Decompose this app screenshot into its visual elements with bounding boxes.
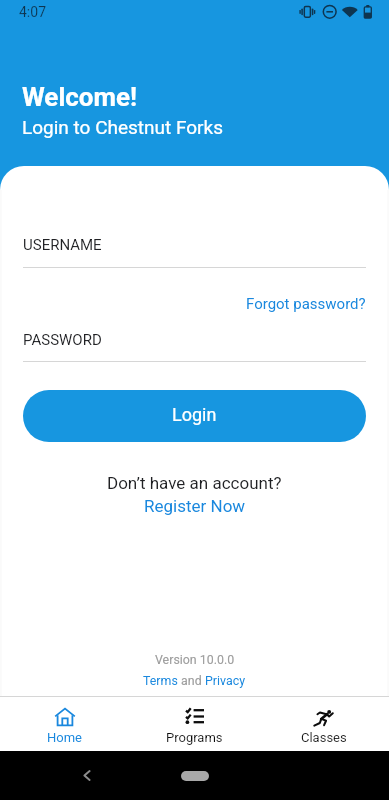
button[interactable]: Home — [0, 697, 129, 751]
staticText: USERNAME — [23, 236, 102, 254]
button[interactable]: Register Now — [144, 496, 246, 516]
button[interactable]: Terms — [143, 673, 178, 688]
staticText: Programs — [166, 730, 223, 745]
button[interactable]: Login — [23, 390, 366, 442]
button[interactable]: Programs — [129, 697, 259, 751]
button[interactable]: Back — [70, 751, 104, 800]
staticText: Login to Chestnut Forks — [22, 116, 223, 138]
button[interactable]: Home gesture — [181, 771, 209, 781]
button[interactable]: Privacy — [205, 673, 246, 688]
staticText: Login — [172, 404, 217, 425]
staticText: Home — [47, 730, 82, 745]
staticText: PASSWORD — [23, 331, 102, 349]
staticText: 4:07 — [19, 4, 46, 20]
staticText: Welcome! — [22, 82, 138, 112]
staticText: Don’t have an account? — [107, 473, 282, 493]
staticText: Version 10.0.0 — [155, 652, 235, 667]
button[interactable]: Forgot password? — [246, 295, 366, 313]
staticText: Register Now — [144, 496, 246, 516]
staticText: Forgot password? — [246, 295, 366, 313]
staticText: Terms — [143, 673, 178, 688]
staticText: Privacy — [205, 673, 246, 688]
staticText: Classes — [301, 730, 347, 745]
staticText: and — [178, 673, 205, 688]
button[interactable]: Classes — [259, 697, 389, 751]
